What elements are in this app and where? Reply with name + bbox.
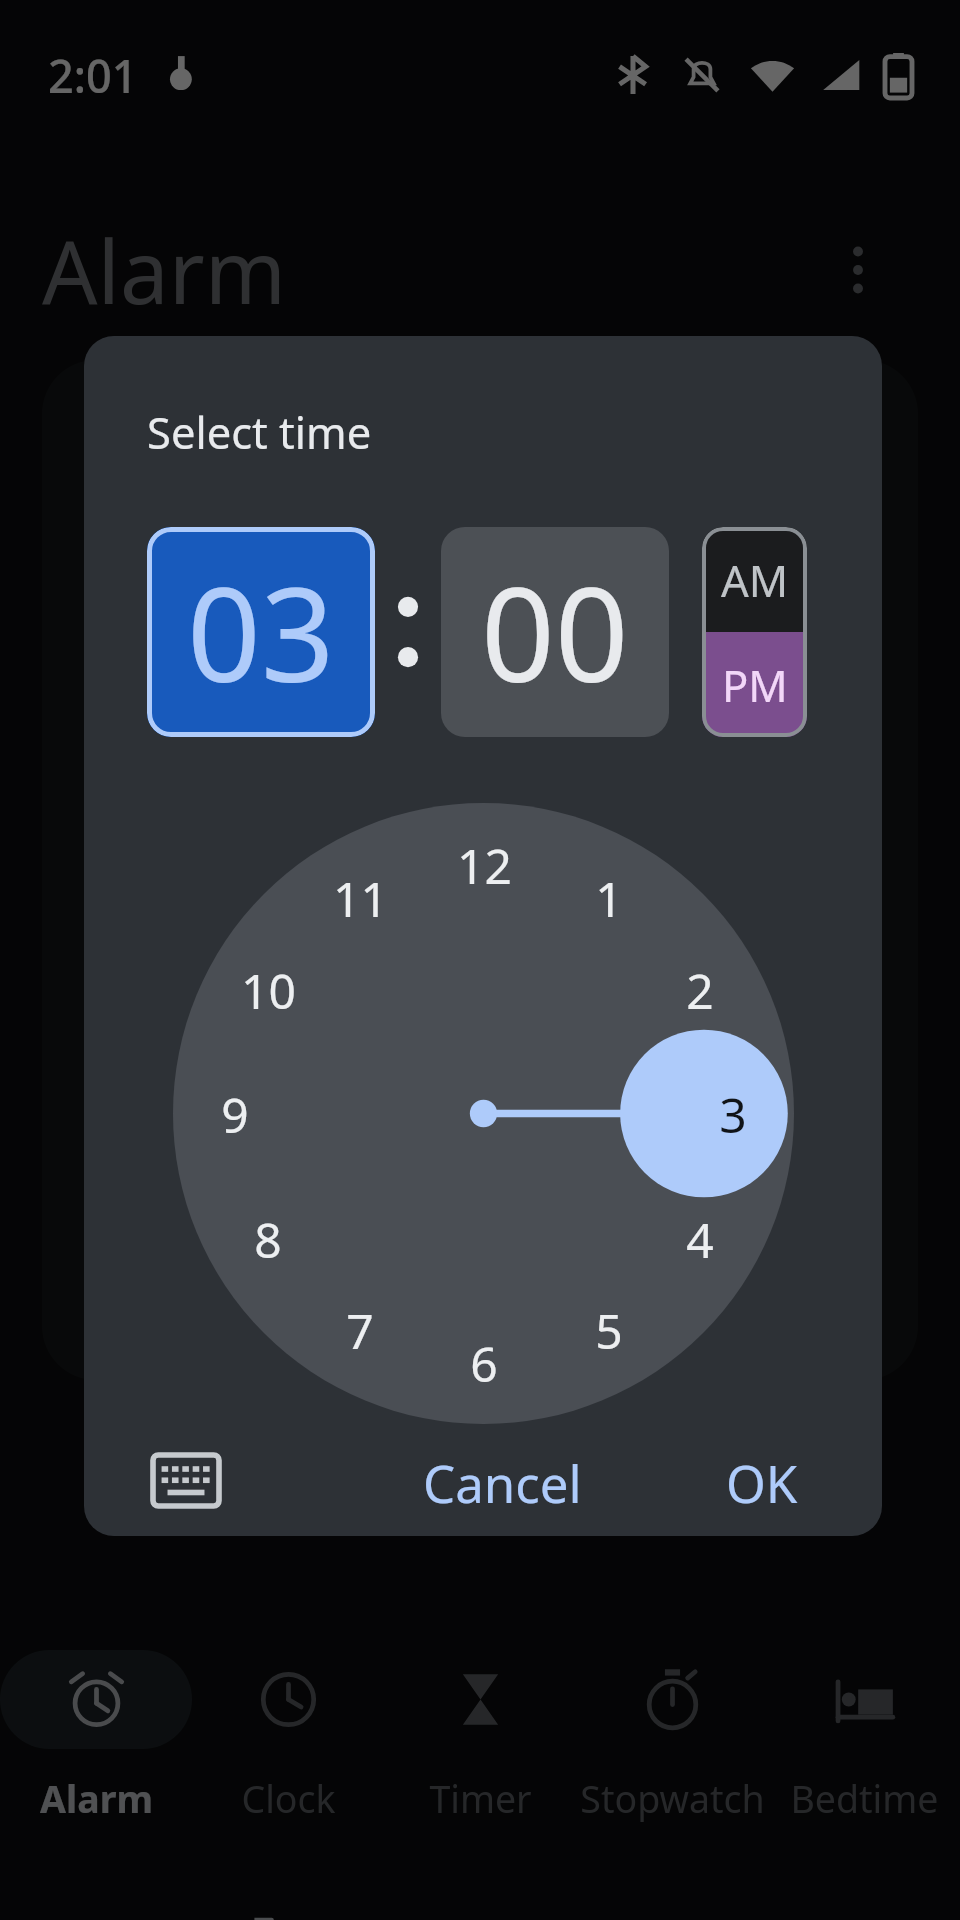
staticText: 11 (333, 866, 388, 931)
staticText: 00 (481, 544, 629, 720)
staticText: OK (726, 1448, 798, 1512)
staticText: Stopwatch (580, 1773, 765, 1824)
staticText: 6 (470, 1331, 498, 1396)
staticText: PM (722, 655, 788, 714)
staticText: 10 (241, 958, 296, 1023)
staticText: 03 (187, 544, 335, 720)
staticText: 7 (346, 1298, 374, 1363)
staticText: 2 (686, 958, 714, 1023)
staticText: Alarm (42, 211, 287, 329)
staticText: Select time (147, 402, 372, 461)
button[interactable]: Expand alarm (768, 426, 876, 534)
staticText: 2:01 (48, 45, 138, 106)
button[interactable]: Alarm (0, 1554, 192, 1920)
staticText: 3 (719, 1082, 747, 1147)
button[interactable]: 03 (147, 527, 375, 737)
staticText: AM (721, 550, 789, 609)
staticText: 12 (457, 833, 512, 898)
staticText: Timer (429, 1773, 532, 1824)
button[interactable]: 00 (441, 527, 669, 737)
staticText: Bedtime (790, 1773, 939, 1824)
button[interactable]: Clock dial (173, 803, 794, 1424)
button[interactable]: OK (696, 1424, 828, 1536)
button[interactable]: PM (702, 632, 807, 737)
button[interactable]: More options (798, 210, 918, 330)
button[interactable]: Clock (192, 1554, 384, 1920)
staticText: Clock (241, 1773, 336, 1824)
button[interactable]: Expand alarm (42, 360, 918, 1380)
staticText: 4 (686, 1207, 714, 1272)
staticText: 9 (221, 1082, 249, 1147)
staticText: 5 (595, 1298, 623, 1363)
button[interactable]: AM (702, 527, 807, 632)
button[interactable]: Bedtime (768, 1554, 960, 1920)
button[interactable]: Switch to text input (132, 1426, 240, 1534)
staticText: 1 (595, 866, 623, 931)
button[interactable]: Timer (384, 1554, 576, 1920)
staticText: Cancel (423, 1448, 582, 1512)
staticText: 8 (254, 1207, 282, 1272)
button[interactable]: Add alarm (387, 1380, 573, 1500)
staticText: Alarm (40, 1773, 153, 1824)
button[interactable]: Cancel (393, 1424, 612, 1536)
button[interactable]: Stopwatch (576, 1554, 768, 1920)
